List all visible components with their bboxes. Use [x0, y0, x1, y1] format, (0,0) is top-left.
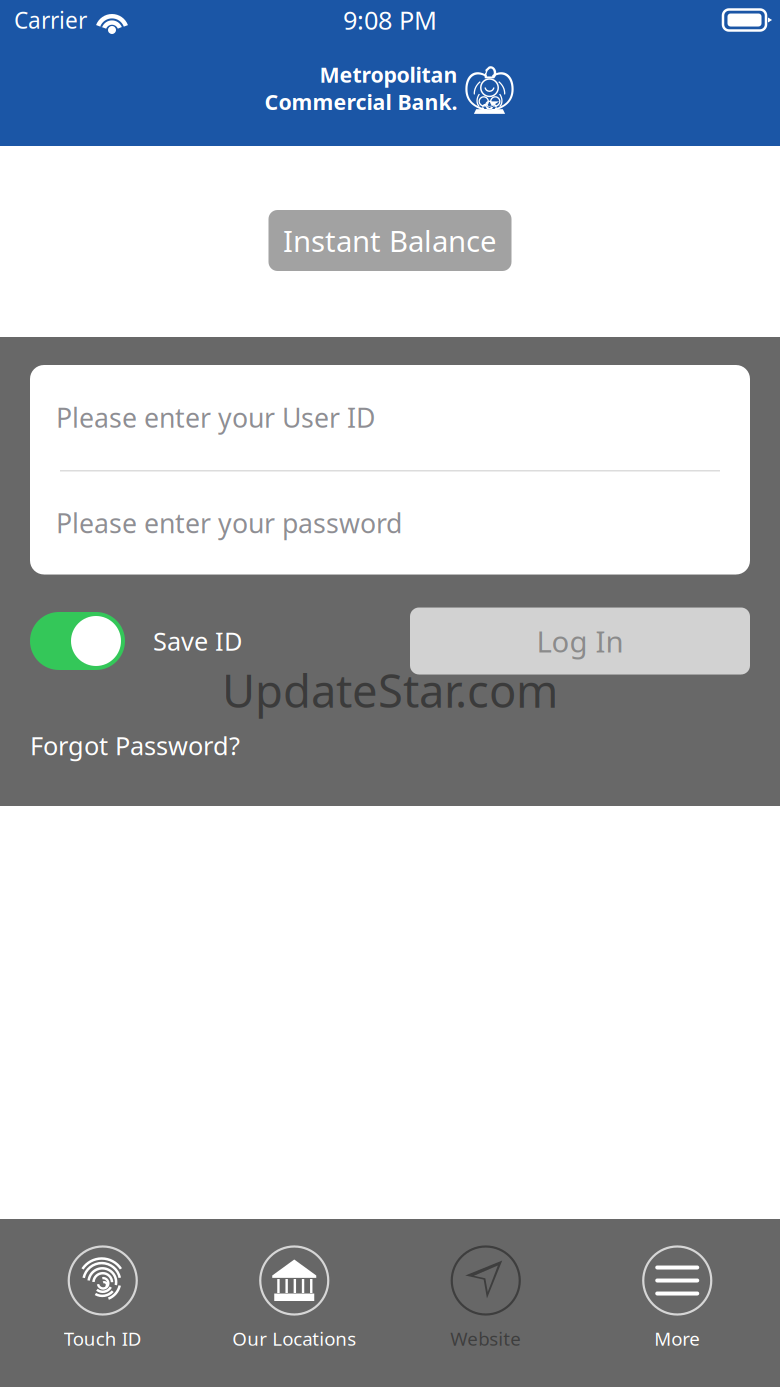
staticText: Carrier [14, 5, 87, 35]
button[interactable]: Forgot Password? [30, 728, 240, 762]
staticText: Save ID [153, 624, 242, 658]
staticText: Metropolitan [319, 60, 457, 89]
staticText: Commercial Bank. [264, 88, 457, 116]
staticText: Touch ID [64, 1326, 142, 1351]
staticText: UpdateStar.com [222, 660, 558, 720]
staticText: Our Locations [232, 1326, 356, 1351]
button[interactable]: Touch ID [7, 1217, 198, 1387]
button[interactable]: More [581, 1217, 773, 1387]
staticText: More [654, 1326, 700, 1351]
button[interactable]: Website [390, 1217, 581, 1387]
button[interactable]: Instant Balance [268, 210, 511, 271]
button[interactable]: Save ID [30, 612, 242, 670]
staticText: Forgot Password? [30, 728, 240, 762]
staticText: Please enter your password [56, 505, 402, 541]
staticText: 9:08 PM [343, 3, 437, 37]
staticText: Please enter your User ID [56, 400, 375, 435]
button[interactable]: Our Locations [198, 1217, 390, 1387]
staticText: Instant Balance [283, 221, 497, 260]
button[interactable]: Log In [410, 607, 750, 674]
staticText: Website [450, 1326, 521, 1351]
staticText: Log In [536, 621, 623, 660]
